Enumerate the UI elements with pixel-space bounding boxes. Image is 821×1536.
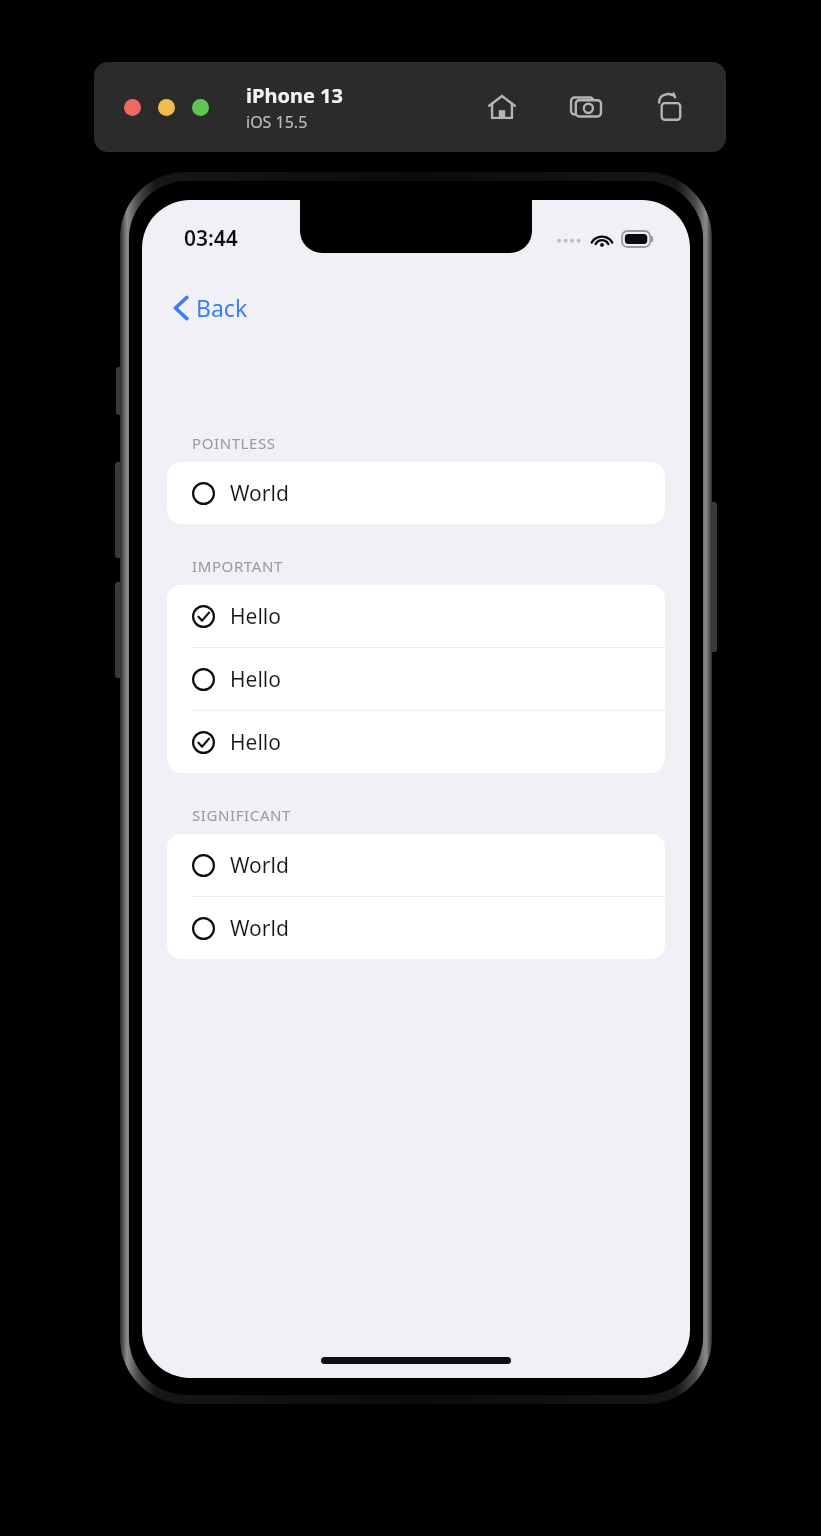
button[interactable]: Hello <box>167 585 665 647</box>
staticText: Hello <box>230 665 281 694</box>
button[interactable]: Hello <box>167 711 665 773</box>
button[interactable]: World <box>167 897 665 959</box>
staticText: iOS 15.5 <box>246 111 308 133</box>
staticText: iPhone 13 <box>246 82 343 109</box>
staticText: Back <box>196 292 248 323</box>
button[interactable]: Home <box>478 83 526 131</box>
button[interactable] <box>192 99 209 116</box>
staticText: 03:44 <box>184 224 238 253</box>
button[interactable]: Hello <box>167 648 665 710</box>
button[interactable] <box>158 99 175 116</box>
button[interactable] <box>124 99 141 116</box>
staticText: World <box>230 851 289 880</box>
staticText: World <box>230 914 289 943</box>
staticText: POINTLESS <box>192 433 276 453</box>
staticText: World <box>230 479 289 508</box>
staticText: SIGNIFICANT <box>192 805 292 825</box>
button[interactable]: Rotate <box>646 83 694 131</box>
staticText: IMPORTANT <box>192 556 283 576</box>
staticText: Hello <box>230 602 281 631</box>
button[interactable]: World <box>167 462 665 524</box>
button[interactable]: Back <box>164 286 258 329</box>
button[interactable]: World <box>167 834 665 896</box>
button[interactable]: Screenshot <box>562 83 610 131</box>
staticText: Hello <box>230 728 281 757</box>
